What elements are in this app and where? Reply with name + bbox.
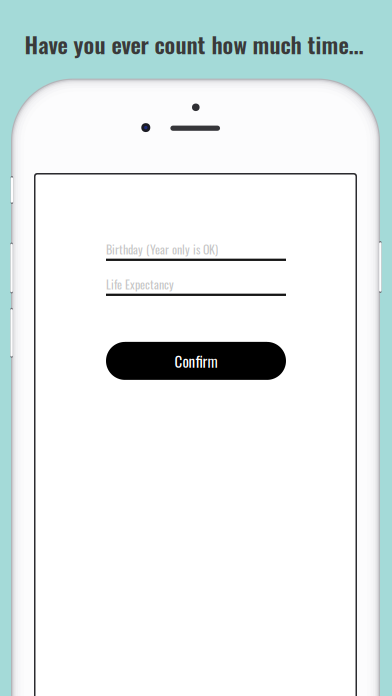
button[interactable]: Birthday (Year only is OK) bbox=[106, 240, 286, 264]
staticText: Birthday (Year only is OK) bbox=[106, 240, 218, 258]
staticText: Have you ever count how much time... bbox=[24, 27, 363, 61]
button[interactable]: Confirm bbox=[106, 342, 286, 380]
staticText: Confirm bbox=[174, 350, 217, 372]
staticText: Life Expectancy bbox=[106, 275, 174, 293]
button[interactable]: Life Expectancy bbox=[106, 275, 286, 299]
